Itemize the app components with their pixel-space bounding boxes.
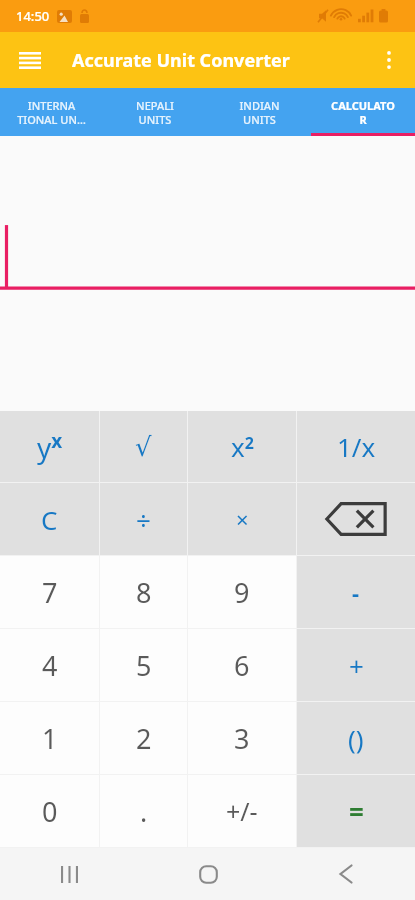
button[interactable]: Home [139, 848, 277, 900]
button[interactable]: () [297, 702, 415, 774]
button[interactable]: x2 [188, 411, 296, 482]
staticText: 1 [42, 720, 58, 757]
button[interactable]: 9 [188, 556, 296, 628]
staticText: INDIAN UNITS [239, 98, 280, 127]
staticText: CALCULATO R [331, 98, 395, 127]
staticText: 6 [234, 647, 250, 684]
staticText: 8 [136, 574, 152, 611]
button[interactable]: CALCULATO R [311, 88, 415, 136]
button[interactable]: × [188, 483, 296, 555]
button[interactable]: 8 [100, 556, 187, 628]
button[interactable]: yx [0, 411, 99, 482]
button[interactable]: Recent apps [0, 848, 139, 900]
button[interactable]: NEPALI UNITS [103, 88, 207, 136]
button[interactable]: 4 [0, 629, 99, 701]
staticText: = [349, 794, 364, 829]
button[interactable]: +/- [188, 775, 296, 847]
button[interactable]: 1/x [297, 411, 415, 482]
staticText: 14:50 [16, 7, 50, 25]
button[interactable]: 3 [188, 702, 296, 774]
button[interactable]: INDIAN UNITS [207, 88, 311, 136]
button[interactable]: INTERNA TIONAL UN… [0, 88, 103, 136]
staticText: √ [135, 432, 152, 462]
staticText: 5 [136, 647, 152, 684]
staticText: - [352, 577, 360, 607]
staticText: () [348, 721, 364, 756]
button[interactable]: 1 [0, 702, 99, 774]
staticText: C [41, 502, 58, 537]
button[interactable]: 2 [100, 702, 187, 774]
staticText: INTERNA TIONAL UN… [17, 98, 86, 127]
staticText: +/- [226, 794, 258, 828]
staticText: NEPALI UNITS [136, 98, 174, 127]
button[interactable]: = [297, 775, 415, 847]
button[interactable]: 6 [188, 629, 296, 701]
button[interactable]: . [100, 775, 187, 847]
staticText: 1/x [337, 429, 376, 464]
button[interactable]: Open navigation drawer [8, 38, 52, 82]
button[interactable]: ÷ [100, 483, 187, 555]
button[interactable]: 0 [0, 775, 99, 847]
button[interactable]: √ [100, 411, 187, 482]
button[interactable]: Back [277, 848, 415, 900]
staticText: × [236, 504, 249, 534]
staticText: Accurate Unit Converter [72, 48, 290, 73]
staticText: + [349, 648, 364, 683]
staticText: 9 [234, 574, 250, 611]
button[interactable]: + [297, 629, 415, 701]
staticText: . [140, 793, 148, 830]
staticText: yx [37, 428, 63, 466]
button[interactable]: 7 [0, 556, 99, 628]
button[interactable]: C [0, 483, 99, 555]
staticText: 2 [136, 720, 152, 757]
staticText: x2 [231, 429, 254, 464]
staticText: ÷ [136, 502, 151, 537]
button[interactable]: 5 [100, 629, 187, 701]
button[interactable]: More options [367, 38, 411, 82]
staticText: 0 [42, 793, 58, 830]
staticText: 7 [42, 574, 58, 611]
staticText: 4 [42, 647, 58, 684]
staticText: 3 [234, 720, 250, 757]
button[interactable]: Backspace [297, 483, 415, 555]
button[interactable]: - [297, 556, 415, 628]
